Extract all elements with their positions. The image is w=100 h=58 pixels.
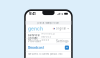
button[interactable]: Broadcast xyxy=(26,44,71,51)
staticText: English xyxy=(56,27,67,30)
staticText: See alerts to current portals info xyxy=(28,53,62,56)
staticText: Service update xyxy=(28,34,40,40)
staticText: Provider xyxy=(28,39,41,43)
staticText: portal.example.com xyxy=(37,21,59,24)
staticText: From Buzz Nov 03 2023 xyxy=(41,32,54,41)
button[interactable]: Change language xyxy=(53,26,69,31)
staticText: Broadcast xyxy=(28,46,44,50)
staticText: 9:41 xyxy=(29,11,36,16)
staticText: Settings xyxy=(56,39,69,43)
button[interactable]: Address bar xyxy=(26,21,71,25)
staticText: gench xyxy=(28,26,43,32)
